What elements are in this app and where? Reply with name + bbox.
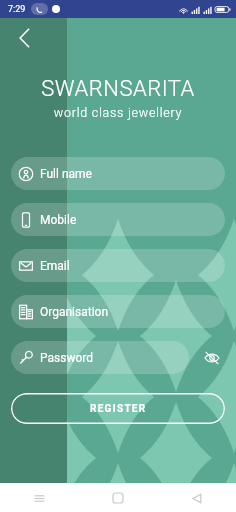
button[interactable]: REGISTER — [11, 393, 225, 424]
staticText: SWARNSARITA — [0, 76, 236, 102]
button[interactable]: Show password — [199, 345, 225, 371]
staticText: Password — [40, 351, 94, 365]
button[interactable]: Recent apps — [25, 484, 53, 512]
staticText: Email — [40, 259, 70, 273]
button[interactable]: Organisation — [11, 295, 225, 328]
button[interactable]: Home — [104, 484, 132, 512]
button[interactable]: Full name — [11, 157, 225, 190]
button[interactable]: Back — [183, 484, 211, 512]
staticText: 7:29 — [8, 4, 26, 15]
staticText: world class jewellery — [0, 105, 236, 120]
button[interactable]: Back — [9, 22, 40, 53]
button[interactable]: Mobile — [11, 203, 225, 236]
staticText: Mobile — [40, 213, 77, 227]
staticText: REGISTER — [90, 403, 147, 415]
staticText: Organisation — [40, 305, 109, 319]
button[interactable]: Password — [11, 341, 189, 374]
staticText: Full name — [40, 167, 92, 181]
button[interactable]: Email — [11, 249, 225, 282]
